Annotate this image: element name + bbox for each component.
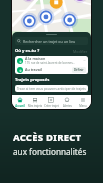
button[interactable]: Menu bbox=[75, 95, 91, 109]
button[interactable]: Alertes bbox=[59, 95, 75, 109]
staticText: Au travail bbox=[25, 67, 42, 72]
staticText: aux fonctionnalités bbox=[13, 146, 87, 157]
staticText: Définir bbox=[74, 68, 84, 72]
button[interactable]: Au travail bbox=[15, 65, 88, 74]
button[interactable]: À la maison bbox=[15, 56, 88, 65]
staticText: À la maison bbox=[25, 56, 46, 61]
staticText: Créer trajet bbox=[44, 104, 59, 108]
button[interactable]: Rechercher un trajet ou un lieu bbox=[15, 37, 88, 45]
button[interactable]: Définir bbox=[72, 67, 86, 73]
staticText: ACCÈS DIRECT bbox=[13, 131, 82, 144]
staticText: 115 rue de saint-laurent de bonnes... bbox=[25, 61, 75, 65]
button[interactable]: Modifier bbox=[73, 49, 88, 54]
button[interactable]: Créer trajet bbox=[43, 95, 59, 109]
staticText: Alertes bbox=[63, 104, 72, 108]
staticText: Trace ai tem vous pouvons anticiper de t… bbox=[17, 87, 86, 91]
staticText: Où y es-tu ? bbox=[15, 48, 40, 54]
staticText: Mes trajets bbox=[28, 104, 42, 108]
button[interactable]: Accueil bbox=[12, 95, 27, 109]
staticText: Rechercher un trajet ou un lieu bbox=[23, 39, 76, 44]
staticText: Trajets proposés bbox=[15, 77, 50, 83]
staticText: Accueil bbox=[15, 104, 25, 108]
button[interactable]: Plus d'options bbox=[83, 59, 86, 62]
button[interactable]: Trace ai tem vous pouvons anticiper de t… bbox=[15, 85, 88, 92]
staticText: Menu bbox=[79, 104, 87, 108]
button[interactable]: Mes trajets bbox=[27, 95, 43, 109]
